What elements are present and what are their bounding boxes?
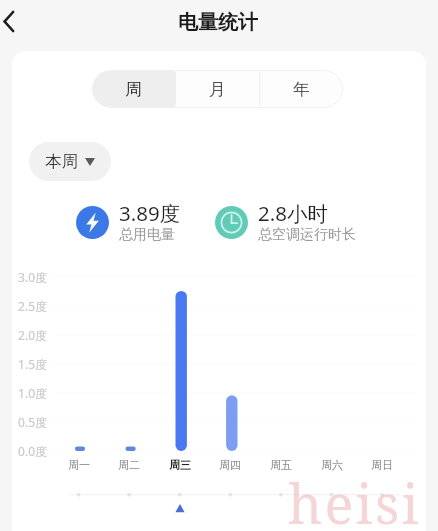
staticText: 本周 [45, 151, 78, 172]
button[interactable]: 年 [260, 70, 343, 108]
staticText: 总用电量 [119, 226, 175, 244]
staticText: 2.8小时 [258, 199, 328, 227]
staticText: 电量统计 [178, 10, 258, 35]
staticText: heisi [288, 466, 422, 531]
staticText: 3.89度 [119, 199, 181, 227]
staticText: 月 [209, 79, 226, 100]
staticText: 周二 [107, 458, 151, 472]
staticText: 周日 [360, 458, 404, 472]
button[interactable]: 周 [92, 70, 175, 108]
staticText: 周四 [208, 458, 252, 472]
button[interactable]: Back [0, 8, 36, 44]
staticText: 3.0度 [12, 269, 47, 285]
staticText: 1.0度 [12, 385, 47, 401]
staticText: 周一 [57, 458, 101, 472]
staticText: 周 [125, 79, 142, 100]
staticText: 周六 [310, 458, 354, 472]
button[interactable]: 本周 [29, 142, 111, 181]
staticText: 总空调运行时长 [258, 226, 356, 244]
button[interactable]: 月 [176, 70, 259, 108]
staticText: 2.0度 [12, 327, 47, 343]
staticText: 周五 [259, 458, 303, 472]
staticText: 0.5度 [12, 414, 47, 430]
staticText: 年 [293, 79, 310, 100]
staticText: 2.5度 [12, 298, 47, 314]
staticText: 0.0度 [12, 443, 47, 459]
staticText: 周三 [158, 458, 202, 472]
staticText: 1.5度 [12, 356, 47, 372]
